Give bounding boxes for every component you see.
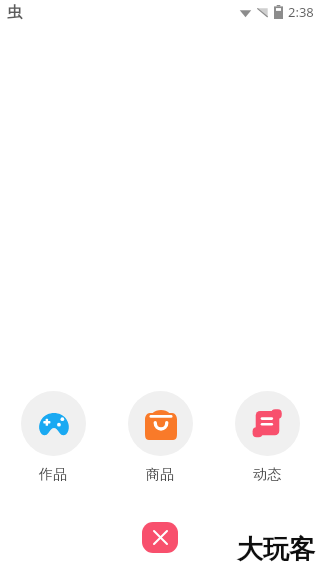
staticText: 大玩客 xyxy=(237,533,315,566)
button[interactable]: 作品 xyxy=(20,391,86,484)
button[interactable]: 关闭 xyxy=(142,522,178,553)
button[interactable]: 商品 xyxy=(127,391,193,484)
staticText: 商品 xyxy=(146,466,174,484)
button[interactable]: 动态 xyxy=(234,391,300,484)
staticText: 作品 xyxy=(39,466,67,484)
staticText: 虫 xyxy=(7,3,22,22)
staticText: 动态 xyxy=(253,466,281,484)
staticText: 2:38 xyxy=(288,3,314,21)
